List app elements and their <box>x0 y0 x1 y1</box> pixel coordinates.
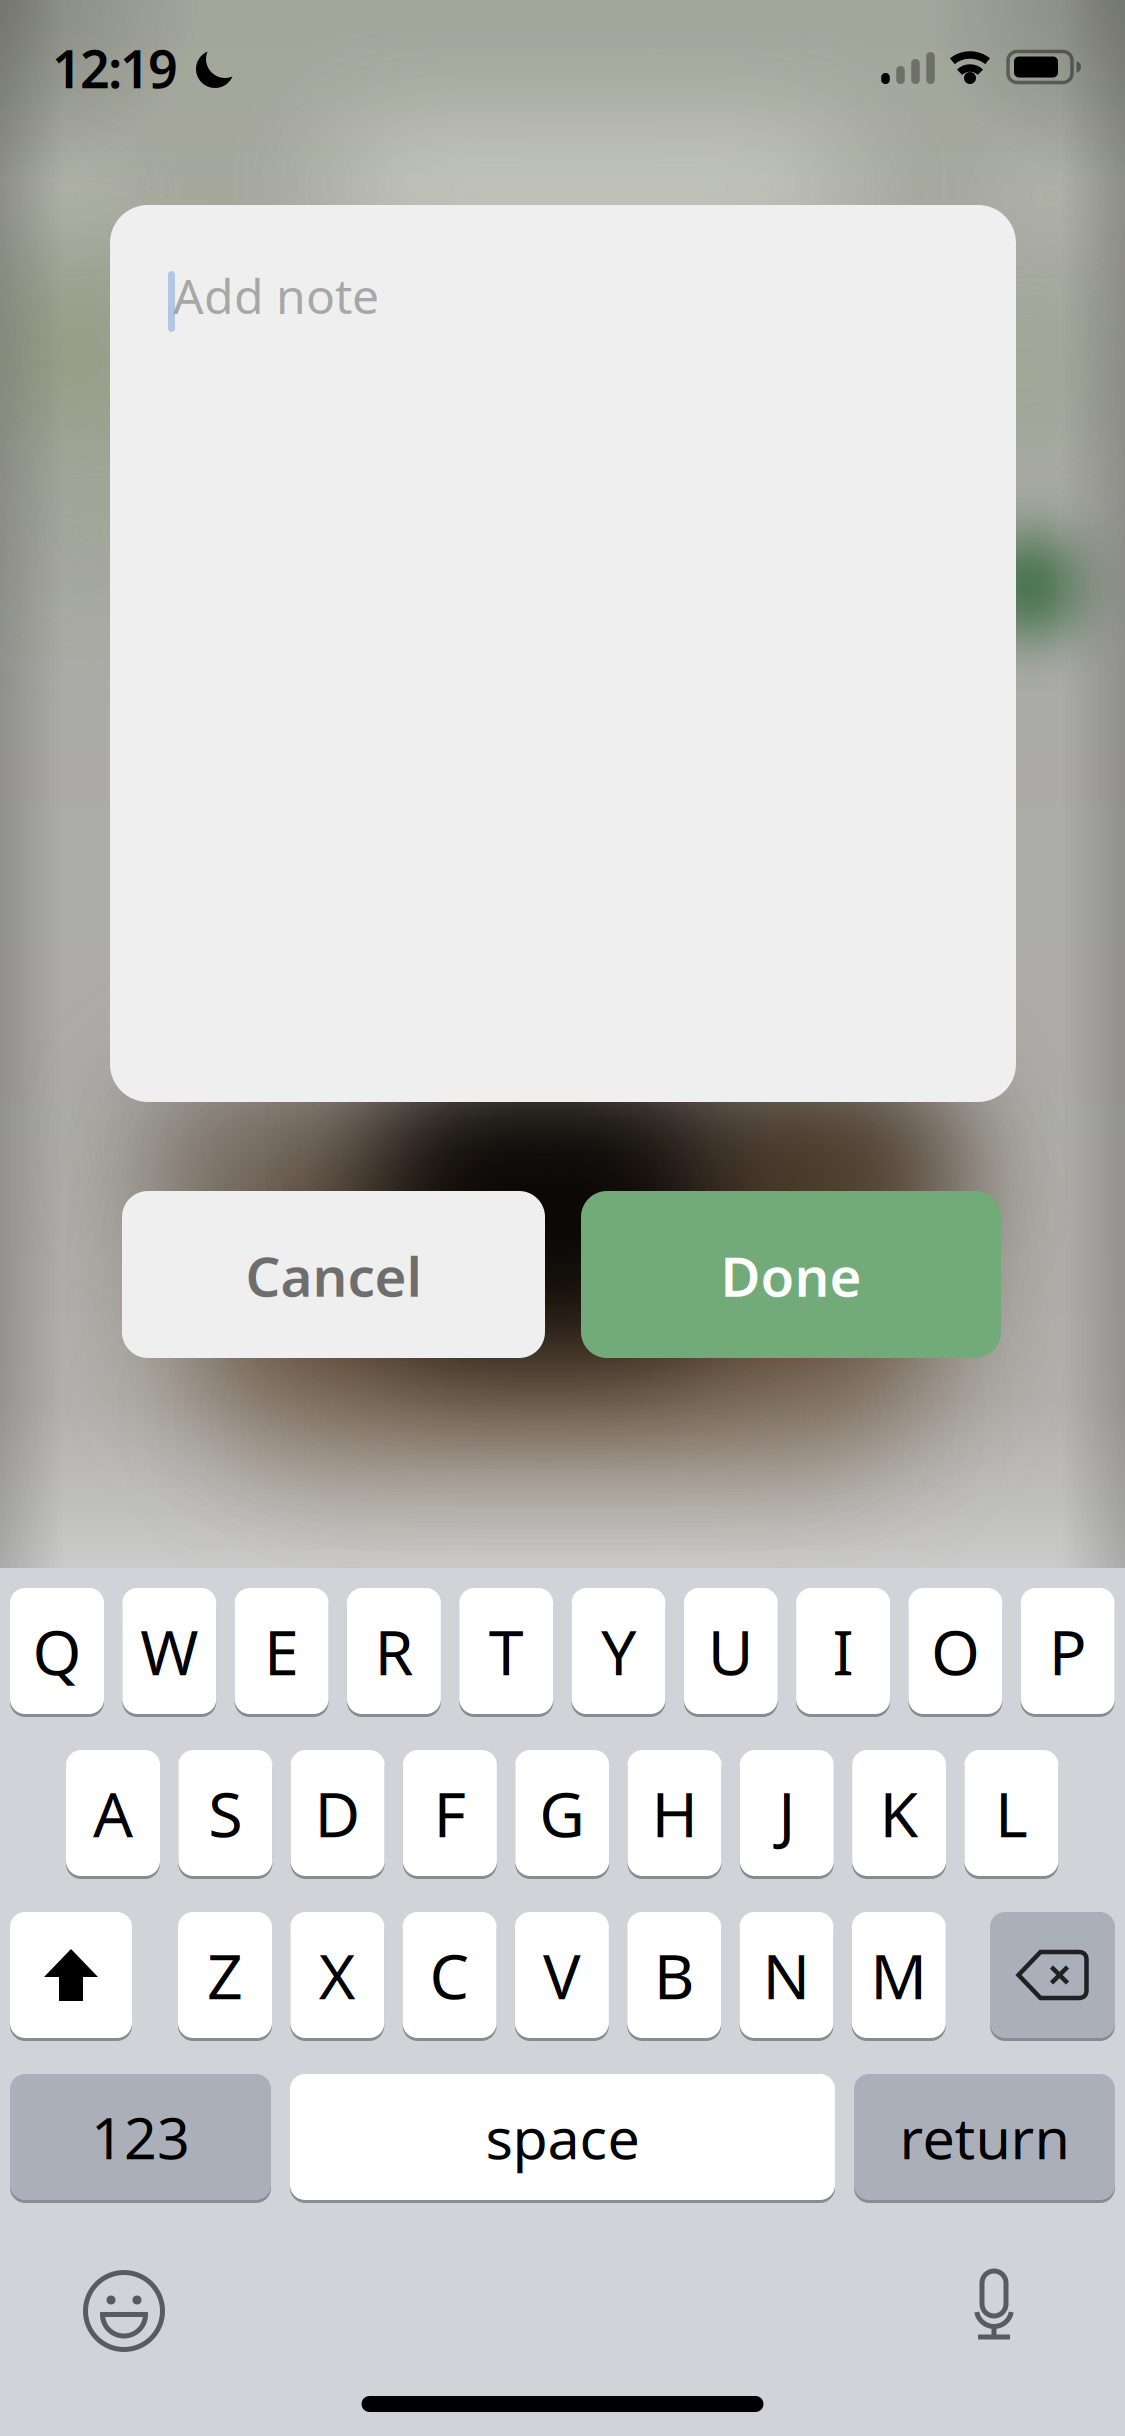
staticText: F <box>433 1771 466 1855</box>
staticText: G <box>539 1771 585 1855</box>
button[interactable]: O <box>908 1586 1002 1715</box>
button[interactable]: Z <box>178 1910 272 2039</box>
button[interactable]: W <box>122 1586 216 1715</box>
button[interactable]: Y <box>571 1586 665 1715</box>
button[interactable]: I <box>796 1586 890 1715</box>
staticText: W <box>140 1609 198 1693</box>
button[interactable]: Delete <box>990 1910 1115 2039</box>
button[interactable]: C <box>403 1910 497 2039</box>
staticText: return <box>899 2099 1069 2175</box>
button[interactable]: M <box>852 1910 946 2039</box>
staticText: L <box>995 1771 1028 1855</box>
staticText: N <box>762 1933 810 2017</box>
staticText: Cancel <box>245 1239 421 1312</box>
button[interactable]: Cancel <box>122 1191 545 1358</box>
button[interactable]: H <box>627 1748 721 1877</box>
staticText: Y <box>601 1609 636 1693</box>
staticText: U <box>708 1609 754 1693</box>
button[interactable]: J <box>740 1748 834 1877</box>
button[interactable]: A <box>66 1748 160 1877</box>
button[interactable]: 123 <box>10 2072 271 2201</box>
staticText: C <box>430 1933 470 2017</box>
staticText: J <box>778 1771 795 1855</box>
staticText: Add note <box>173 264 379 327</box>
staticText: space <box>485 2099 639 2175</box>
staticText: I <box>833 1609 854 1693</box>
staticText: R <box>374 1609 413 1693</box>
staticText: Q <box>32 1609 81 1693</box>
button[interactable]: B <box>627 1910 721 2039</box>
button[interactable]: S <box>178 1748 272 1877</box>
staticText: P <box>1049 1609 1087 1693</box>
button[interactable]: G <box>515 1748 609 1877</box>
button[interactable]: L <box>964 1748 1058 1877</box>
button[interactable]: Shift <box>10 1910 132 2039</box>
button[interactable]: Add note <box>110 205 1016 1102</box>
button[interactable]: U <box>684 1586 778 1715</box>
staticText: 123 <box>91 2099 190 2175</box>
staticText: K <box>880 1771 919 1855</box>
button[interactable]: K <box>852 1748 946 1877</box>
button[interactable]: D <box>291 1748 385 1877</box>
staticText: O <box>931 1609 980 1693</box>
staticText: Done <box>720 1239 861 1312</box>
button[interactable]: R <box>347 1586 441 1715</box>
button[interactable]: Q <box>10 1586 104 1715</box>
staticText: S <box>208 1771 242 1855</box>
staticText: V <box>543 1933 581 2017</box>
button[interactable]: E <box>235 1586 329 1715</box>
button[interactable]: Emoji <box>64 2251 184 2371</box>
staticText: X <box>319 1933 356 2017</box>
button[interactable]: P <box>1021 1586 1115 1715</box>
button[interactable]: Dictation <box>934 2254 1054 2364</box>
staticText: Z <box>207 1933 243 2017</box>
staticText: 12:19 <box>52 33 178 103</box>
staticText: T <box>489 1609 524 1693</box>
staticText: A <box>93 1771 133 1855</box>
staticText: E <box>264 1609 299 1693</box>
staticText: H <box>651 1771 697 1855</box>
button[interactable]: F <box>403 1748 497 1877</box>
button[interactable]: N <box>739 1910 833 2039</box>
staticText: B <box>654 1933 695 2017</box>
button[interactable]: space <box>290 2072 835 2201</box>
button[interactable]: V <box>515 1910 609 2039</box>
button[interactable]: return <box>854 2072 1115 2201</box>
staticText: D <box>315 1771 361 1855</box>
button[interactable]: Done <box>581 1191 1001 1358</box>
button[interactable]: X <box>290 1910 384 2039</box>
staticText: M <box>870 1933 927 2017</box>
button[interactable]: T <box>459 1586 553 1715</box>
